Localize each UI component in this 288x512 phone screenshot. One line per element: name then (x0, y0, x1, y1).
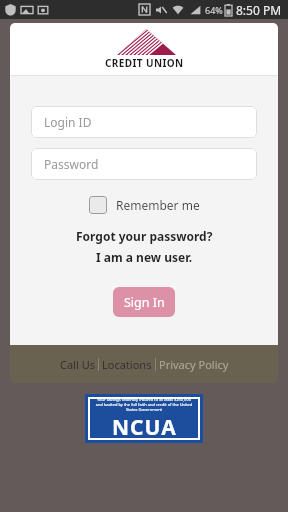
button[interactable]: Locations (99, 357, 155, 372)
button[interactable]: Login ID (31, 106, 257, 138)
staticText: Remember me (116, 197, 200, 213)
staticText: Call Us (60, 357, 95, 372)
staticText: Locations (102, 357, 152, 372)
button[interactable]: Forgot your password? (72, 227, 217, 245)
staticText: I am a new user. (96, 249, 193, 265)
staticText: Login ID (44, 114, 92, 130)
button[interactable]: Remember me (87, 194, 202, 216)
staticText: Privacy Policy (159, 357, 229, 372)
button[interactable]: Password (31, 148, 257, 180)
other: NCUA insured (88, 397, 200, 440)
staticText: Your savings federally insured to at lea… (93, 397, 195, 402)
button[interactable]: Call Us (57, 357, 98, 372)
button[interactable]: Sign In (113, 287, 175, 317)
button[interactable]: I am a new user. (92, 248, 197, 266)
staticText: 64% (205, 4, 223, 16)
staticText: NCUA (112, 413, 177, 440)
staticText: CREDIT UNION (105, 56, 184, 70)
staticText: Password (44, 156, 99, 172)
staticText: 8:50 PM (236, 2, 282, 18)
staticText: Forgot your password? (76, 228, 213, 244)
button[interactable]: Privacy Policy (156, 357, 232, 372)
staticText: Sign In (124, 294, 165, 311)
staticText: and backed by the full faith and credit … (93, 402, 195, 412)
